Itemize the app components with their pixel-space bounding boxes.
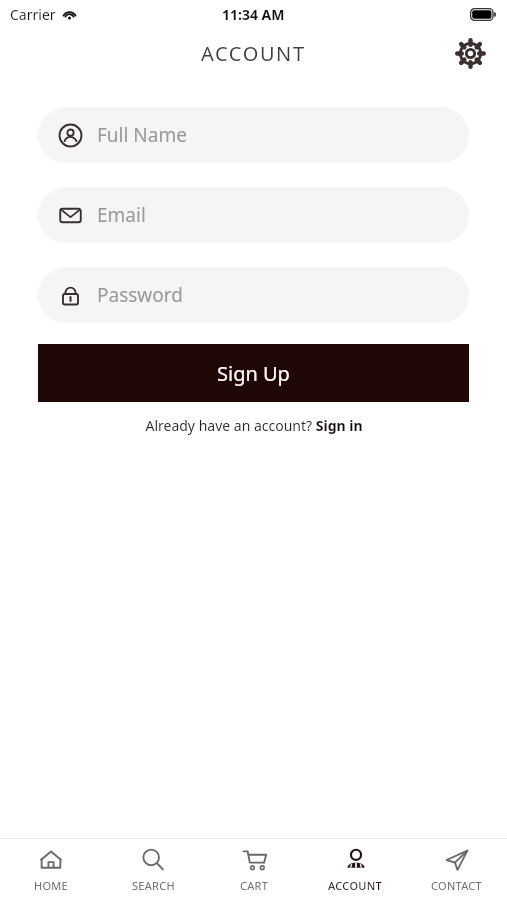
- button[interactable]: Email: [38, 187, 469, 243]
- button[interactable]: Settings: [453, 36, 487, 70]
- staticText: Carrier: [10, 5, 56, 24]
- staticText: ACCOUNT: [328, 878, 383, 893]
- staticText: Full Name: [97, 122, 187, 148]
- button[interactable]: Full Name: [38, 107, 469, 163]
- button[interactable]: Password: [38, 267, 469, 323]
- button[interactable]: CONTACT: [406, 839, 507, 900]
- staticText: Password: [97, 282, 183, 308]
- button[interactable]: CART: [204, 839, 305, 900]
- button[interactable]: ACCOUNT: [305, 839, 406, 900]
- staticText: ACCOUNT: [201, 40, 306, 67]
- button[interactable]: Already have an account? Sign in: [0, 416, 507, 435]
- staticText: HOME: [34, 878, 69, 893]
- button[interactable]: SEARCH: [102, 839, 204, 900]
- staticText: Already have an account? Sign in: [145, 416, 363, 435]
- staticText: 11:34 AM: [222, 5, 285, 24]
- staticText: Email: [97, 202, 146, 228]
- staticText: Sign Up: [217, 360, 290, 387]
- button[interactable]: HOME: [0, 839, 102, 900]
- staticText: CONTACT: [431, 878, 483, 893]
- staticText: SEARCH: [132, 878, 175, 893]
- button[interactable]: Sign Up: [38, 344, 469, 402]
- staticText: CART: [240, 878, 269, 893]
